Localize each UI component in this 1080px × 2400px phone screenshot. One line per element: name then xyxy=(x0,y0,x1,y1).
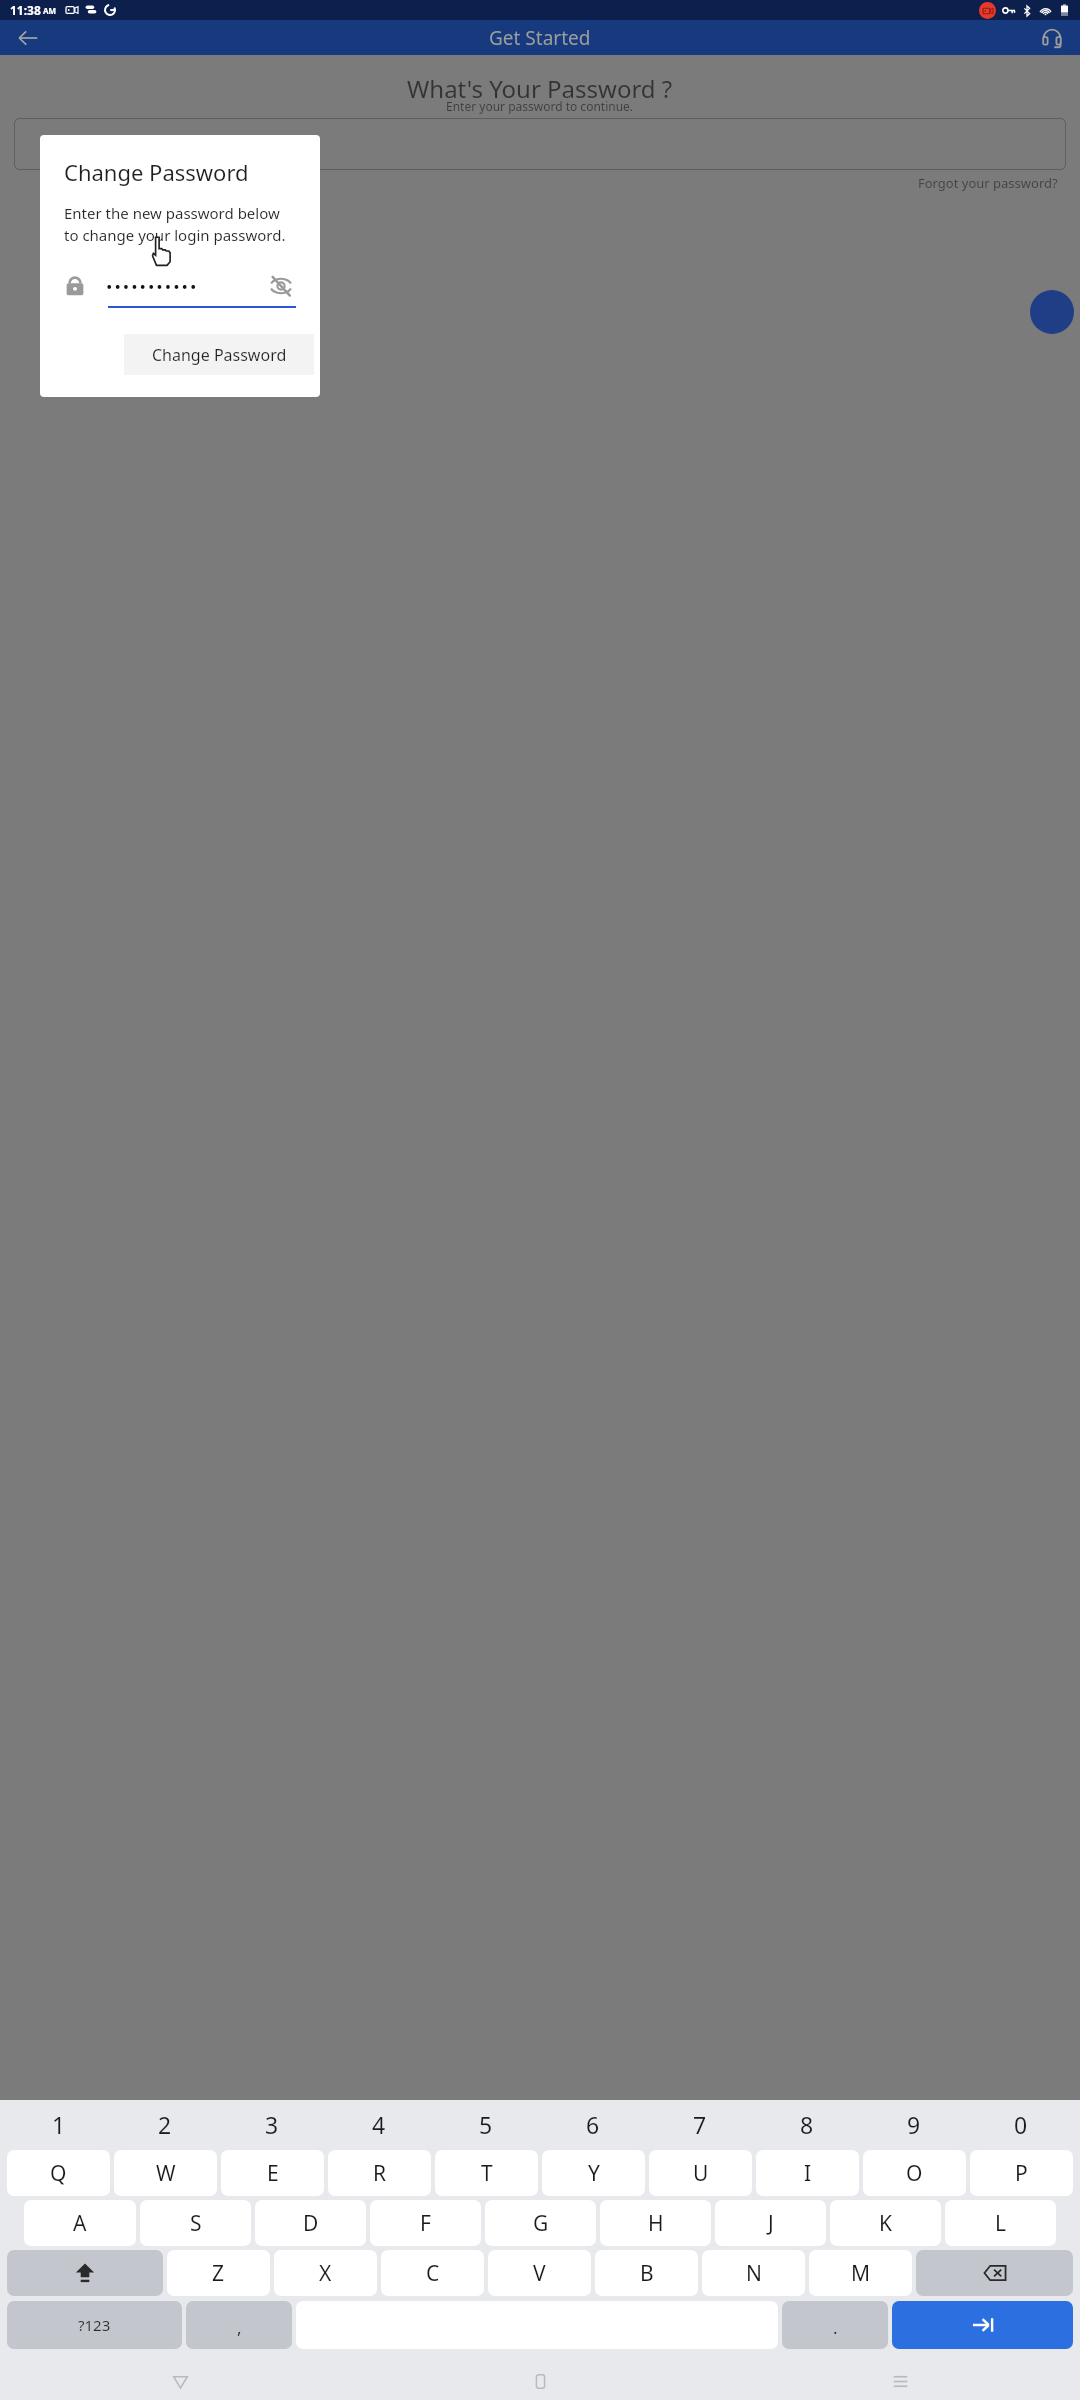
staticText: 8 xyxy=(800,2109,814,2140)
button[interactable]: Backspace xyxy=(916,2250,1073,2296)
button[interactable]: 5 xyxy=(432,2100,539,2148)
staticText: 7 xyxy=(693,2109,707,2140)
button[interactable]: Continue xyxy=(1030,290,1074,334)
button[interactable]: 8 xyxy=(753,2100,860,2148)
staticText: AM xyxy=(43,5,57,16)
button[interactable]: Q xyxy=(7,2150,110,2196)
button[interactable]: D xyxy=(255,2200,366,2246)
staticText: U xyxy=(693,2159,709,2188)
staticText: N xyxy=(746,2259,762,2288)
staticText: C xyxy=(426,2259,440,2288)
button[interactable]: L xyxy=(945,2200,1056,2246)
staticText: Forgot your password? xyxy=(918,174,1058,192)
button[interactable]: Change Password xyxy=(124,334,314,375)
staticText: 9 xyxy=(907,2109,921,2140)
staticText: 1 xyxy=(52,2109,66,2140)
staticText: Enter the new password below to change y… xyxy=(64,203,286,246)
staticText: K xyxy=(879,2209,892,2238)
staticText: L xyxy=(995,2209,1007,2238)
button[interactable]: U xyxy=(649,2150,752,2196)
staticText: H xyxy=(648,2209,664,2238)
button[interactable]: 7 xyxy=(646,2100,753,2148)
button[interactable]: 1 xyxy=(6,2100,112,2148)
staticText: D xyxy=(303,2209,319,2238)
staticText: 5 xyxy=(479,2109,493,2140)
staticText: Q xyxy=(50,2159,67,2188)
button[interactable]: 9 xyxy=(860,2100,967,2148)
staticText: G xyxy=(533,2209,549,2238)
button[interactable]: I xyxy=(756,2150,859,2196)
button[interactable]: Support xyxy=(1032,20,1072,55)
button[interactable]: F xyxy=(370,2200,481,2246)
button[interactable]: N xyxy=(702,2250,805,2296)
staticText: E xyxy=(267,2159,279,2188)
button[interactable]: . xyxy=(782,2301,888,2349)
button[interactable]: Z xyxy=(167,2250,270,2296)
staticText: What's Your Password ? xyxy=(407,72,673,105)
button[interactable]: G xyxy=(485,2200,596,2246)
button[interactable]: P xyxy=(970,2150,1073,2196)
button[interactable]: Back xyxy=(8,20,48,55)
button[interactable]: 3 xyxy=(218,2100,325,2148)
staticText: Enter your password to continue. xyxy=(446,98,634,114)
staticText: X xyxy=(319,2259,332,2288)
staticText: Change Password xyxy=(64,157,249,187)
staticText: I xyxy=(804,2159,812,2188)
button[interactable]: ?123 xyxy=(7,2301,182,2349)
staticText: 6 xyxy=(586,2109,600,2140)
staticText: 3 xyxy=(265,2109,279,2140)
staticText: W xyxy=(156,2159,176,2188)
button[interactable]: S xyxy=(140,2200,251,2246)
button[interactable]: R xyxy=(328,2150,431,2196)
button[interactable]: B xyxy=(595,2250,698,2296)
button[interactable]: , xyxy=(186,2301,292,2349)
staticText: B xyxy=(640,2259,654,2288)
button[interactable]: O xyxy=(863,2150,966,2196)
staticText: J xyxy=(768,2209,774,2238)
staticText: 11:38 xyxy=(10,2,41,18)
button[interactable]: T xyxy=(435,2150,538,2196)
staticText: P xyxy=(1015,2159,1028,2188)
button[interactable]: 4 xyxy=(325,2100,432,2148)
button[interactable]: Enter xyxy=(892,2301,1073,2349)
button[interactable]: W xyxy=(114,2150,217,2196)
button[interactable]: 0 xyxy=(967,2100,1074,2148)
staticText: Y xyxy=(588,2159,600,2188)
staticText: 2 xyxy=(158,2109,172,2140)
button[interactable]: 6 xyxy=(539,2100,646,2148)
staticText: S xyxy=(190,2209,202,2238)
button[interactable]: M xyxy=(809,2250,912,2296)
staticText: A xyxy=(73,2209,87,2238)
staticText: V xyxy=(533,2259,546,2288)
staticText: ?123 xyxy=(78,2315,111,2335)
staticText: 0 xyxy=(1014,2109,1028,2140)
button[interactable]: C xyxy=(381,2250,484,2296)
staticText: Get Started xyxy=(489,25,591,51)
button[interactable]: E xyxy=(221,2150,324,2196)
staticText: T xyxy=(481,2159,493,2188)
staticText: Change Password xyxy=(152,344,287,366)
button[interactable]: Y xyxy=(542,2150,645,2196)
button[interactable]: J xyxy=(715,2200,826,2246)
staticText: , xyxy=(237,2316,242,2339)
button[interactable]: 2 xyxy=(112,2100,218,2148)
staticText: Z xyxy=(212,2259,225,2288)
button[interactable]: A xyxy=(24,2200,136,2246)
staticText: O xyxy=(906,2159,923,2188)
staticText: 4 xyxy=(372,2109,386,2140)
button[interactable]: V xyxy=(488,2250,591,2296)
button[interactable]: X xyxy=(274,2250,377,2296)
button[interactable]: H xyxy=(600,2200,711,2246)
button[interactable]: Show password xyxy=(266,271,296,301)
button[interactable]: Shift xyxy=(7,2250,163,2296)
staticText: . xyxy=(833,2316,838,2339)
staticText: ••••••••••• xyxy=(106,275,199,298)
staticText: R xyxy=(373,2159,387,2188)
button[interactable]: K xyxy=(830,2200,941,2246)
staticText: M xyxy=(851,2259,871,2288)
staticText: F xyxy=(420,2209,431,2238)
